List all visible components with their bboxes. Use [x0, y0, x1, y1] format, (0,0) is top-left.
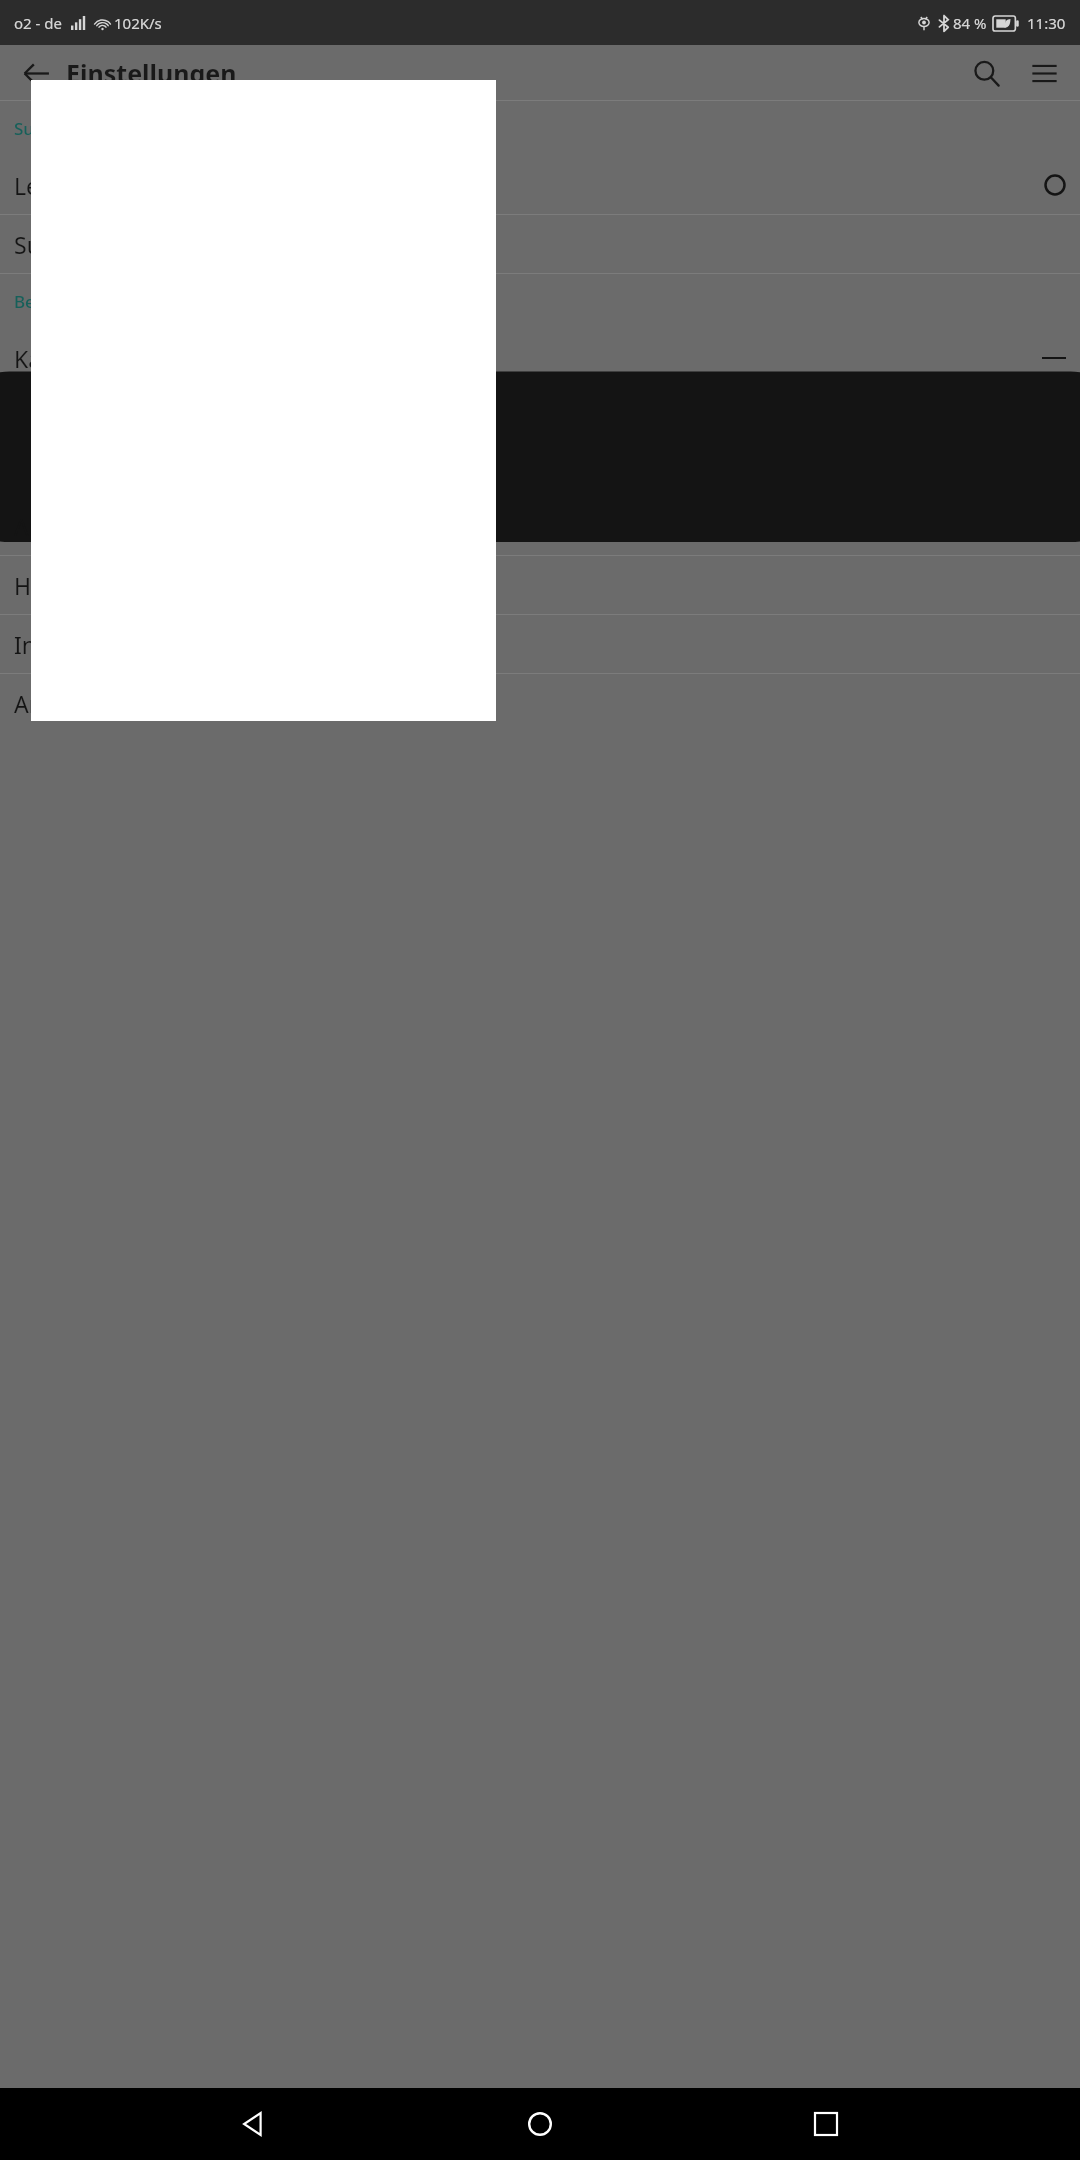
button[interactable]: Lesezeichen	[0, 156, 1080, 214]
staticText: Suchen	[14, 117, 74, 140]
button[interactable]: Anzeige	[0, 497, 1080, 555]
staticText: 11:30	[1027, 13, 1066, 33]
staticText: Lesezeichen	[14, 170, 145, 201]
button[interactable]: Suchmaschine	[0, 215, 1080, 273]
button[interactable]: Menu	[1022, 51, 1066, 95]
staticText: Anmelden	[14, 688, 125, 719]
staticText: Hilfe	[14, 570, 64, 601]
staticText: Suchmaschine	[14, 229, 170, 260]
button[interactable]: Back	[222, 2092, 286, 2156]
button[interactable]: Home	[508, 2092, 572, 2156]
staticText: Kälteeinbruch	[14, 343, 165, 374]
staticText: Anzeige	[14, 511, 100, 542]
staticText: Info	[14, 629, 58, 660]
staticText: o2 - de	[14, 13, 62, 33]
button[interactable]: Hilfe	[0, 556, 1080, 614]
staticText: Einstellungen	[66, 56, 237, 90]
staticText: 102K/s	[114, 13, 162, 33]
button[interactable]: Search	[964, 51, 1008, 95]
button[interactable]: Recents	[794, 2092, 858, 2156]
button[interactable]: Anmelden	[0, 674, 1080, 732]
button[interactable]: Info	[0, 615, 1080, 673]
button[interactable]: Kälteeinbruch	[0, 329, 1080, 387]
staticText: Benachrichtigungen	[14, 290, 179, 313]
button[interactable]: Back	[14, 51, 58, 95]
staticText: 84 %	[953, 13, 987, 33]
